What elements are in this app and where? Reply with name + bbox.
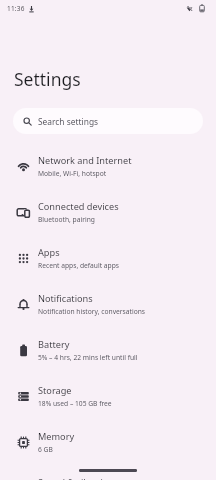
staticText: Battery	[38, 338, 70, 351]
staticText: Recent apps, default apps	[38, 261, 120, 270]
button[interactable]: Apps	[0, 235, 216, 281]
staticText: Notifications	[38, 292, 93, 305]
staticText: Sound & vibration	[38, 476, 114, 480]
staticText: Apps	[38, 246, 60, 259]
button[interactable]: Battery	[0, 327, 216, 373]
staticText: Memory	[38, 430, 75, 443]
staticText: 11:36	[7, 4, 25, 13]
staticText: Network and Internet	[38, 154, 132, 167]
button[interactable]: Search settings	[13, 108, 203, 134]
staticText: Bluetooth, pairing	[38, 215, 95, 224]
staticText: Mobile, Wi-Fi, hotspot	[38, 169, 107, 178]
staticText: 6 GB	[38, 445, 53, 454]
button[interactable]: Notifications	[0, 281, 216, 327]
staticText: Connected devices	[38, 200, 119, 213]
staticText: Search settings	[38, 116, 99, 127]
button[interactable]: Connected devices	[0, 189, 216, 235]
staticText: Notification history, conversations	[38, 307, 146, 316]
button[interactable]: Network and Internet	[0, 143, 216, 189]
staticText: Settings	[14, 67, 81, 91]
staticText: 18% used – 105 GB free	[38, 399, 112, 408]
button[interactable]: Storage	[0, 373, 216, 419]
staticText: Storage	[38, 384, 72, 397]
staticText: 5% – 4 hrs, 22 mins left until full	[38, 353, 138, 362]
button[interactable]: Memory	[0, 419, 216, 465]
